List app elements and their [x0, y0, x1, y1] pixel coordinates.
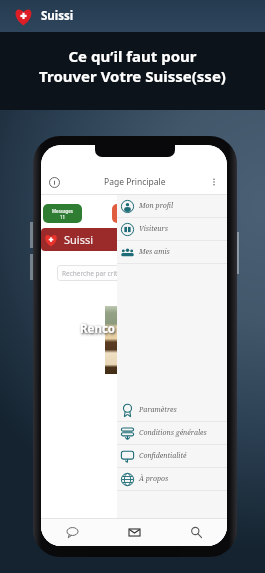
button[interactable]: Information — [46, 174, 62, 190]
staticText: Trouver Votre Suisse(sse) — [39, 66, 226, 86]
button[interactable]: Messages — [103, 519, 165, 546]
staticText: À propos — [139, 474, 169, 484]
staticText: Mes amis — [139, 247, 170, 257]
button[interactable]: Suissi — [41, 228, 227, 251]
staticText: Page Principale — [104, 176, 166, 188]
button[interactable]: Mes amis — [117, 241, 227, 263]
button[interactable]: À propos — [117, 468, 227, 490]
staticText: Paramètres — [139, 405, 177, 415]
staticText: Suissi — [41, 8, 74, 24]
button[interactable]: Conditions générales — [117, 422, 227, 444]
staticText: Ce qu’il faut pour — [68, 46, 197, 66]
staticText: Renco — [80, 321, 116, 337]
button[interactable] — [112, 204, 148, 223]
staticText: Recherche par critère — [62, 269, 128, 278]
button[interactable]: Confidentialité — [117, 445, 227, 467]
button[interactable]: Recherche par critère — [57, 265, 227, 281]
staticText: Messages 11 — [52, 208, 73, 220]
button[interactable]: Messages 11 — [43, 204, 82, 223]
button[interactable]: Paramètres — [117, 399, 227, 421]
staticText: Confidentialité — [139, 451, 187, 461]
staticText: Mon profil — [139, 201, 174, 211]
staticText: Suissi — [64, 232, 94, 247]
button[interactable]: Mon profil — [117, 195, 227, 217]
staticText: Visiteurs — [139, 224, 168, 234]
button[interactable]: Chat — [41, 519, 103, 546]
button[interactable]: More options — [207, 175, 221, 189]
button[interactable]: Visiteurs — [117, 218, 227, 240]
button[interactable]: Search — [165, 519, 227, 546]
staticText: Conditions générales — [139, 428, 207, 438]
